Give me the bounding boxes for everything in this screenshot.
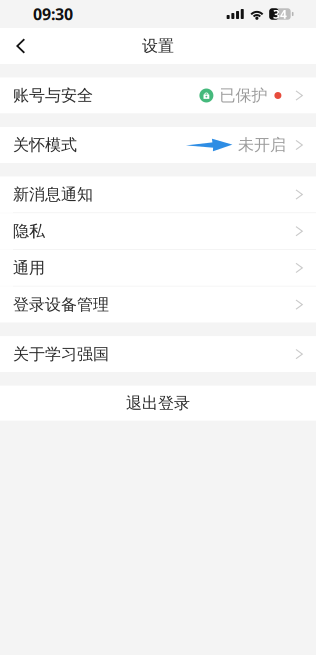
staticText: 34	[273, 6, 287, 22]
staticText: 登录设备管理	[13, 295, 109, 314]
staticText: 通用	[13, 258, 45, 278]
staticText: 09:30	[33, 3, 73, 25]
button[interactable]: 新消息通知	[0, 176, 316, 212]
staticText: 已保护	[219, 86, 267, 105]
button[interactable]: 通用	[0, 250, 316, 286]
button[interactable]: 账号与安全	[0, 77, 316, 113]
button[interactable]: 关于学习强国	[0, 336, 316, 372]
staticText: 关于学习强国	[13, 344, 109, 364]
staticText: 账号与安全	[13, 86, 93, 105]
button[interactable]: 关怀模式	[0, 127, 316, 163]
button[interactable]: 返回	[0, 28, 38, 64]
staticText: 退出登录	[126, 393, 190, 413]
staticText: 未开启	[238, 135, 286, 155]
button[interactable]: 登录设备管理	[0, 287, 316, 323]
staticText: 新消息通知	[13, 185, 93, 204]
staticText: 隐私	[13, 221, 45, 241]
staticText: 关怀模式	[13, 135, 77, 155]
staticText: 设置	[142, 36, 174, 56]
button[interactable]: 隐私	[0, 213, 316, 249]
button[interactable]: 退出登录	[0, 386, 316, 421]
